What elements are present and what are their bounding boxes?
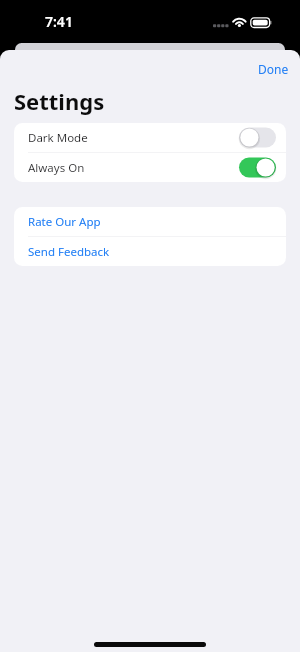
staticText: Settings — [14, 86, 105, 116]
staticText: Done — [258, 61, 289, 77]
staticText: Always On — [28, 160, 85, 176]
button[interactable]: Done — [246, 60, 300, 78]
button[interactable]: Rate Our App — [14, 207, 286, 236]
staticText: Dark Mode — [28, 130, 88, 146]
staticText: 7:41 — [45, 12, 73, 31]
staticText: Rate Our App — [28, 214, 101, 230]
other: On — [239, 157, 276, 178]
button[interactable]: Send Feedback — [14, 237, 286, 266]
other: Off — [239, 127, 276, 148]
button[interactable]: Dark Mode — [14, 123, 286, 152]
button[interactable]: Always On — [14, 153, 286, 182]
staticText: Send Feedback — [28, 244, 110, 260]
